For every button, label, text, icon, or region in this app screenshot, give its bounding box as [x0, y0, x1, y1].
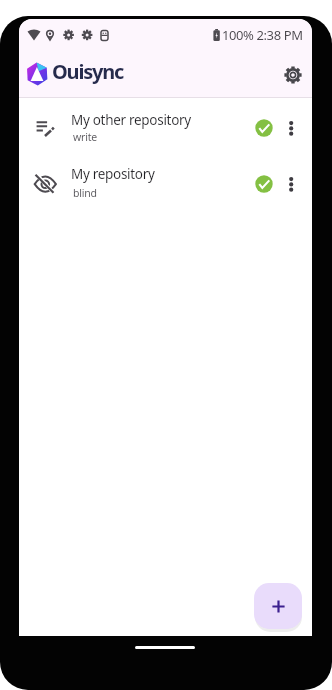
staticText: write — [73, 130, 98, 144]
staticText: blind — [73, 186, 97, 200]
button[interactable] — [277, 114, 305, 142]
staticText: My other repository — [71, 111, 191, 129]
button[interactable]: My other repository — [19, 100, 312, 156]
staticText: 100% 2:38 PM — [222, 26, 303, 43]
button[interactable] — [254, 583, 302, 629]
button[interactable] — [277, 170, 305, 198]
staticText: Ouisync — [52, 58, 124, 85]
button[interactable]: My repository — [19, 156, 312, 212]
button[interactable] — [278, 60, 308, 90]
staticText: My repository — [71, 165, 155, 183]
